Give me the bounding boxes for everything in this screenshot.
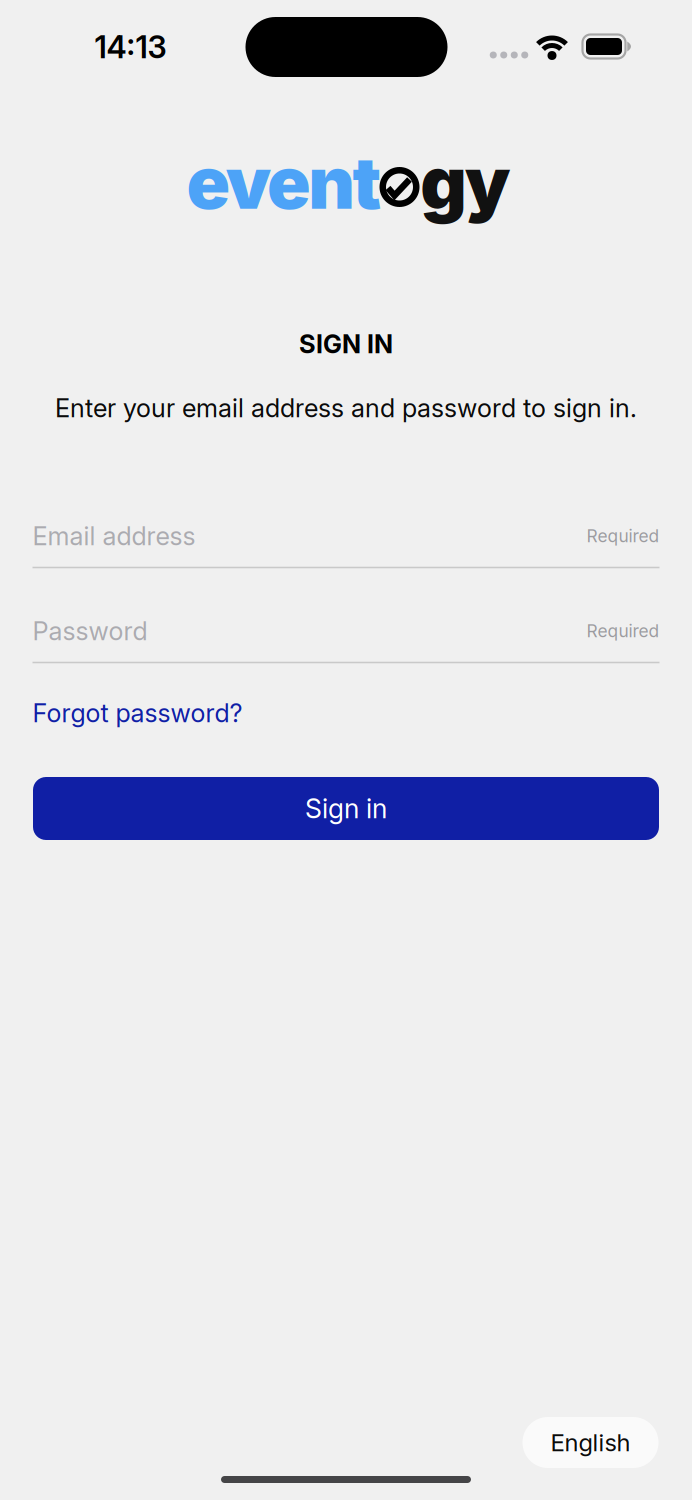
staticText: SIGN IN: [299, 329, 393, 359]
staticText: gy: [420, 140, 511, 225]
staticText: Required: [586, 621, 659, 641]
button[interactable]: English: [522, 1417, 658, 1468]
button[interactable]: Email address: [32, 506, 659, 566]
staticText: Sign in: [305, 793, 387, 824]
staticText: Email address: [32, 521, 195, 551]
button[interactable]: Sign in: [33, 777, 659, 840]
staticText: Password: [32, 616, 147, 646]
button[interactable]: Password: [32, 601, 659, 661]
staticText: Enter your email address and password to…: [55, 393, 637, 423]
staticText: English: [550, 1428, 630, 1457]
staticText: Required: [586, 526, 659, 546]
staticText: event: [186, 140, 382, 225]
staticText: Forgot password?: [32, 698, 242, 728]
staticText: 14:13: [94, 29, 166, 65]
button[interactable]: Forgot password?: [32, 698, 242, 728]
